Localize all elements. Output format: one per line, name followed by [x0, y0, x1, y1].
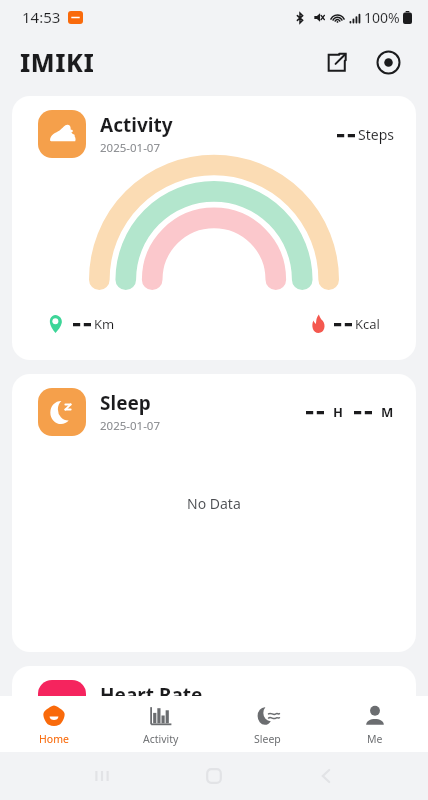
staticText: Me — [367, 732, 383, 746]
button[interactable]: Sleep — [214, 696, 321, 752]
staticText: Sleep — [254, 732, 281, 746]
staticText: 2025-01-07 — [100, 710, 161, 726]
staticText: Home — [39, 732, 69, 746]
staticText: Activity — [100, 112, 173, 138]
staticText: Km — [94, 315, 115, 333]
staticText: M — [381, 403, 394, 421]
staticText: Steps — [358, 125, 394, 144]
staticText: 14:53 — [22, 7, 61, 27]
staticText: Kcal — [355, 315, 380, 333]
staticText: IMIKI — [20, 45, 95, 79]
staticText: 100% — [364, 8, 400, 27]
button[interactable]: Device — [368, 42, 408, 82]
button[interactable]: Me — [321, 696, 428, 752]
staticText: 2025-01-07 — [100, 140, 161, 156]
staticText: 2025-01-07 — [100, 418, 161, 434]
button[interactable]: Heart Rate — [12, 666, 416, 786]
button[interactable]: Activity — [107, 696, 214, 752]
staticText: No Data — [187, 494, 241, 513]
button[interactable]: Share — [316, 42, 356, 82]
staticText: Sleep — [100, 390, 151, 416]
staticText: Activity — [143, 732, 179, 746]
button[interactable]: Home — [0, 696, 107, 752]
staticText: H — [333, 403, 343, 421]
staticText: Heart Rate — [100, 682, 203, 708]
button[interactable]: Activity — [12, 96, 416, 360]
button[interactable]: Sleep — [12, 374, 416, 652]
staticText: bpm — [365, 695, 394, 713]
